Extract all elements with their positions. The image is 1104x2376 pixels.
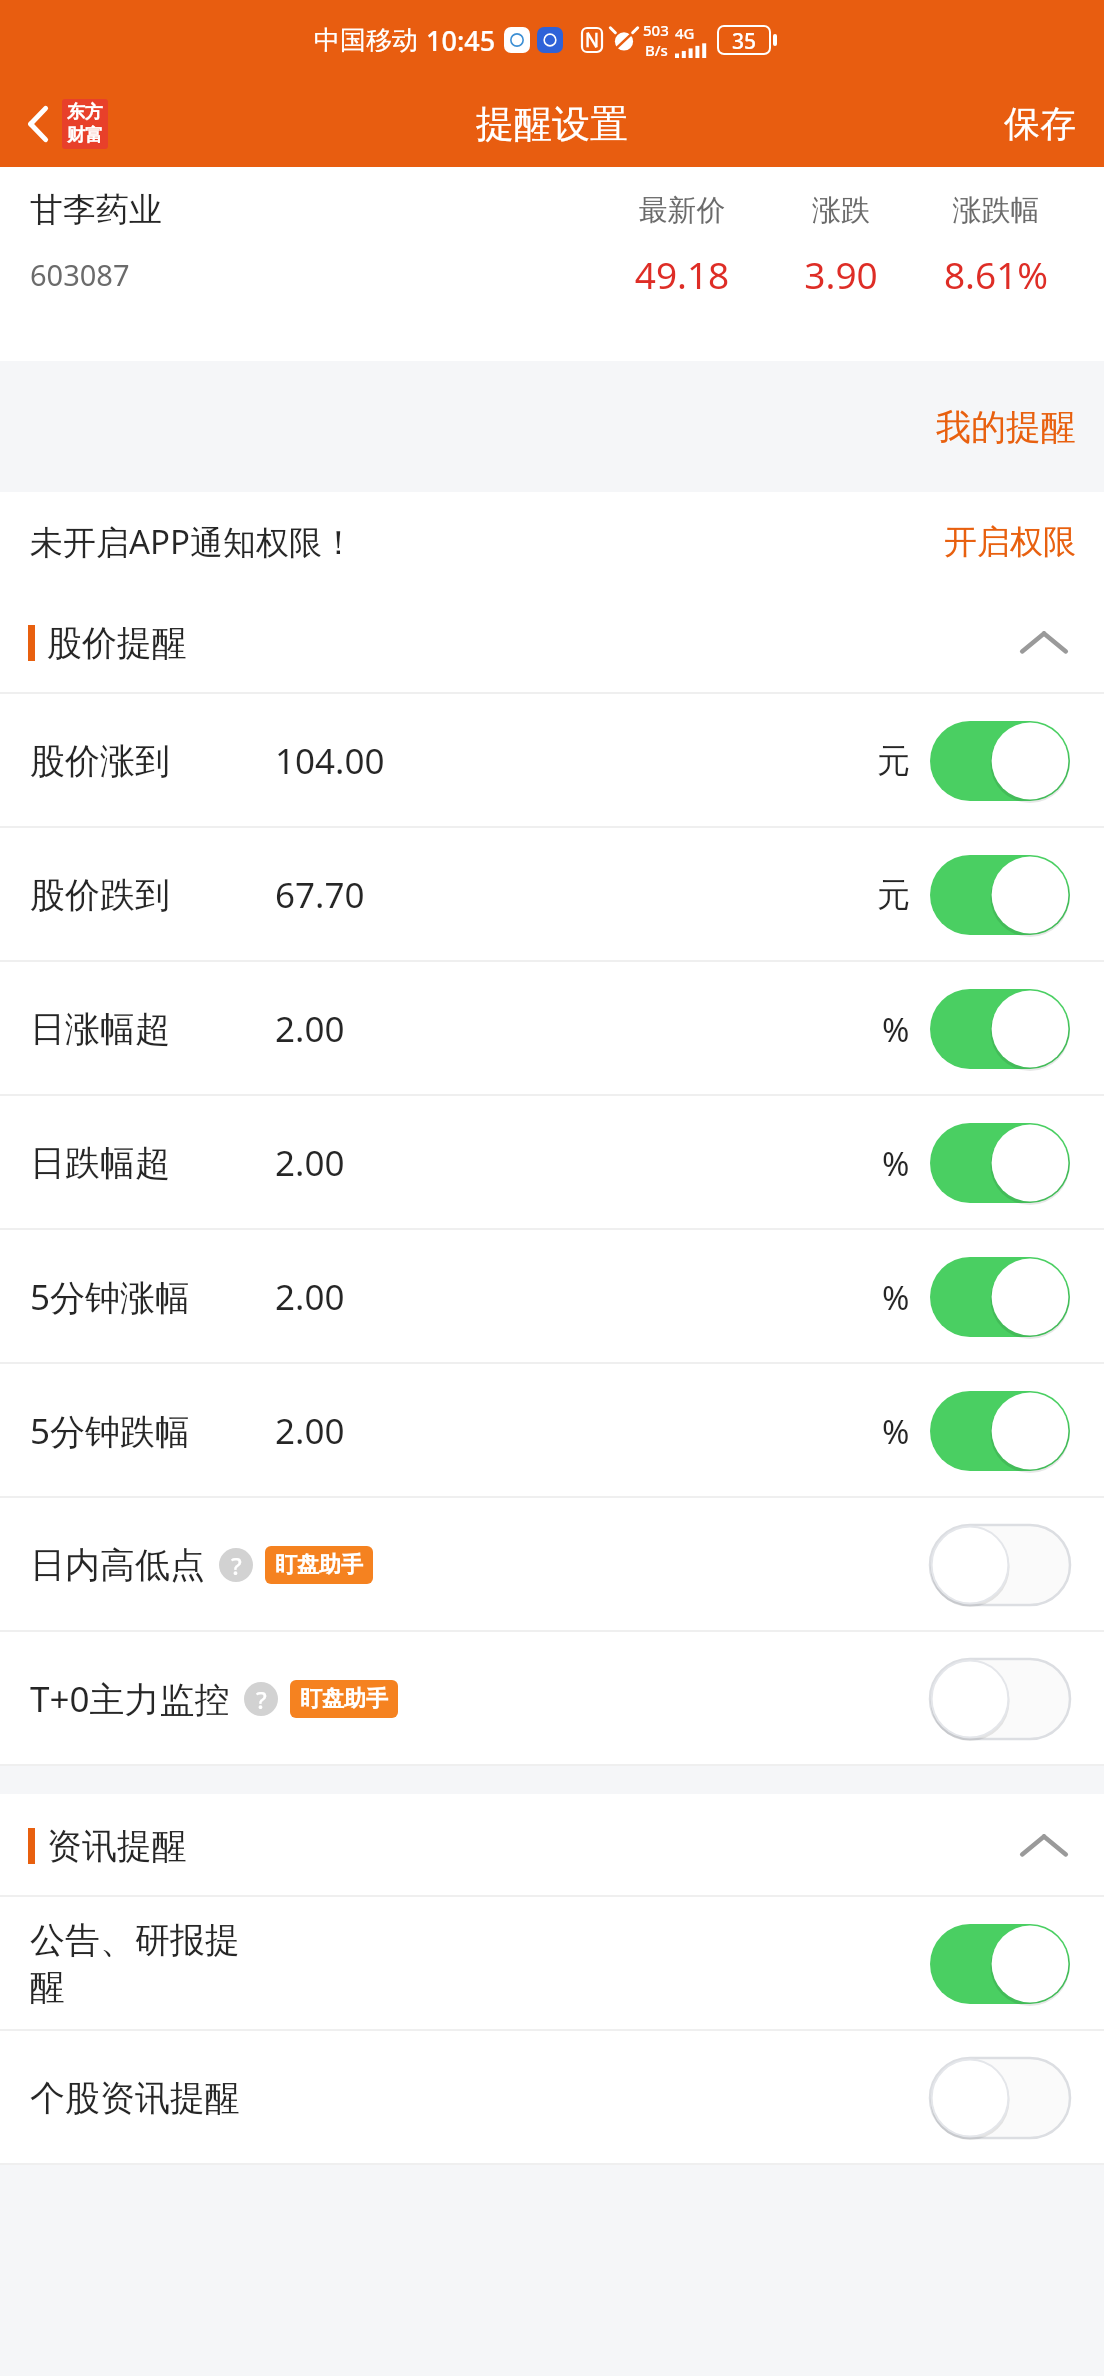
staticText: 股价跌到 [30, 873, 245, 917]
button[interactable]: 资讯提醒 [0, 1794, 1104, 1897]
staticText: 603087 [30, 255, 130, 294]
button[interactable]: 开关已开启 [926, 851, 1074, 939]
staticText: 涨跌幅 [916, 192, 1076, 229]
staticText: 2.00 [275, 1407, 345, 1455]
button[interactable]: 帮助 [244, 1682, 278, 1716]
other: 折叠 [1018, 1831, 1070, 1861]
staticText: 日跌幅超 [30, 1141, 245, 1185]
staticText: 股价涨到 [30, 739, 245, 783]
button[interactable]: 开关已关闭 [926, 2054, 1074, 2142]
staticText: 未开启APP通知权限！ [30, 519, 356, 564]
button[interactable]: 开关已开启 [926, 1387, 1074, 1475]
button[interactable]: 开关已开启 [926, 1119, 1074, 1207]
button[interactable]: 保存 [976, 87, 1104, 160]
staticText: 股价提醒 [47, 621, 187, 665]
button[interactable]: 开启权限 [916, 507, 1104, 577]
staticText: 2.00 [275, 1139, 345, 1187]
staticText: 日内高低点 [30, 1543, 205, 1587]
staticText: 涨跌 [766, 192, 916, 229]
staticText: 503 [643, 20, 669, 40]
staticText: 67.70 [275, 871, 365, 919]
staticText: 10:45 [426, 22, 496, 59]
staticText: 2.00 [275, 1273, 345, 1321]
button[interactable]: 开关已开启 [926, 1253, 1074, 1341]
staticText: % [882, 1007, 910, 1052]
staticText: B/s [645, 40, 668, 60]
staticText: 甘李药业 [30, 189, 162, 231]
button[interactable]: 开关已关闭 [926, 1655, 1074, 1743]
staticText: 提醒设置 [476, 100, 628, 148]
button[interactable]: 股价提醒 [0, 591, 1104, 694]
other: 折叠 [1018, 628, 1070, 658]
staticText: 财富 [67, 124, 103, 147]
staticText: 公告、研报提醒 [30, 1918, 245, 2010]
staticText: 104.00 [275, 737, 385, 785]
staticText: 最新价 [598, 192, 766, 229]
staticText: 35 [732, 27, 757, 53]
staticText: 元 [877, 740, 910, 782]
staticText: 日涨幅超 [30, 1007, 245, 1051]
staticText: 5分钟跌幅 [30, 1407, 245, 1455]
staticText: 中国移动 [314, 24, 418, 57]
button[interactable]: 返回东方财富 [18, 91, 114, 157]
button[interactable]: 开关已开启 [926, 985, 1074, 1073]
staticText: 个股资讯提醒 [30, 2076, 245, 2120]
staticText: 5分钟涨幅 [30, 1273, 245, 1321]
button[interactable]: 开关已开启 [926, 1920, 1074, 2008]
staticText: 4G [675, 23, 695, 43]
staticText: T+0主力监控 [30, 1675, 230, 1723]
staticText: 盯盘助手 [300, 1685, 388, 1713]
staticText: % [882, 1275, 910, 1320]
button[interactable]: 开关已开启 [926, 717, 1074, 805]
staticText: % [882, 1409, 910, 1454]
staticText: % [882, 1141, 910, 1186]
staticText: 东方 [67, 101, 103, 124]
staticText: ? [231, 1549, 242, 1582]
button[interactable]: 帮助 [219, 1548, 253, 1582]
staticText: 资讯提醒 [47, 1824, 187, 1868]
staticText: 2.00 [275, 1005, 345, 1053]
staticText: 49.18 [598, 249, 766, 299]
button[interactable]: 我的提醒 [908, 393, 1104, 461]
staticText: ? [256, 1683, 267, 1716]
staticText: 8.61% [916, 249, 1076, 299]
staticText: 盯盘助手 [275, 1551, 363, 1579]
staticText: 3.90 [766, 249, 916, 299]
staticText: 元 [877, 874, 910, 916]
button[interactable]: 开关已关闭 [926, 1521, 1074, 1609]
